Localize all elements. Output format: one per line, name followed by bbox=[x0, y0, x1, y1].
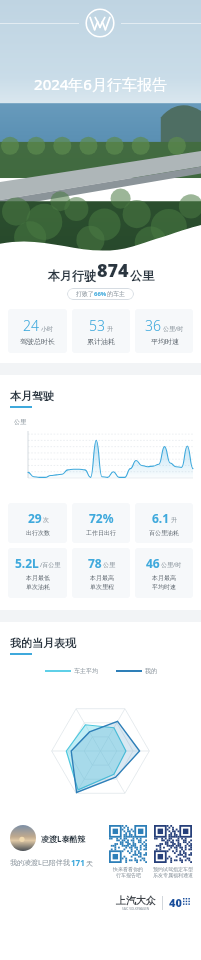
other: Volkswagen bbox=[85, 8, 115, 38]
staticText: 53 bbox=[89, 316, 105, 335]
button[interactable]: 预约试驾指定车型乐友专属福利通道 bbox=[153, 825, 193, 878]
staticText: 本月最高 bbox=[152, 574, 176, 582]
button[interactable]: 36 bbox=[135, 309, 193, 353]
button[interactable]: 72% bbox=[72, 503, 130, 543]
staticText: 升 bbox=[107, 325, 113, 333]
button[interactable]: 29 bbox=[8, 503, 67, 543]
button[interactable]: 5.2L bbox=[8, 548, 67, 598]
staticText: 66% bbox=[94, 290, 107, 298]
staticText: 的车主 bbox=[107, 290, 125, 298]
staticText: 5.2L bbox=[15, 555, 39, 571]
staticText: 工作日出行 bbox=[86, 529, 116, 537]
staticText: 小时 bbox=[41, 325, 53, 333]
staticText: 公里/时 bbox=[163, 325, 184, 333]
staticText: SAIC VOLKSWAGEN bbox=[122, 907, 150, 911]
staticText: 46 bbox=[146, 555, 160, 571]
staticText: 百公里油耗 bbox=[149, 529, 179, 537]
button[interactable]: 24 bbox=[8, 309, 67, 353]
staticText: 上汽大众 bbox=[116, 894, 156, 907]
staticText: 升 bbox=[171, 516, 177, 524]
button[interactable]: 6.1 bbox=[135, 503, 193, 543]
staticText: 预约试驾指定车型 bbox=[153, 866, 193, 872]
button[interactable]: 78 bbox=[72, 548, 130, 598]
button[interactable]: 53 bbox=[72, 309, 130, 353]
staticText: 次 bbox=[43, 516, 49, 524]
staticText: 乐友专属福利通道 bbox=[153, 872, 193, 878]
staticText: 40 bbox=[169, 895, 182, 910]
staticText: 公里 bbox=[103, 561, 115, 569]
staticText: 公里 bbox=[14, 418, 26, 426]
staticText: 出行次数 bbox=[26, 529, 50, 537]
staticText: 874 bbox=[97, 258, 129, 283]
staticText: 我的当月表现 bbox=[10, 636, 76, 650]
staticText: 2024年6月行车报告 bbox=[0, 74, 201, 94]
staticText: 平均时速 bbox=[151, 337, 179, 346]
staticText: 打败了 bbox=[76, 290, 94, 298]
staticText: 我的凌渡L已陪伴我 bbox=[10, 858, 70, 868]
staticText: 本月最低 bbox=[26, 574, 50, 582]
staticText: 78 bbox=[88, 555, 102, 571]
staticText: 行车报告吧 bbox=[116, 872, 141, 878]
staticText: 6.1 bbox=[152, 510, 170, 526]
button[interactable]: 46 bbox=[135, 548, 193, 598]
staticText: 29 bbox=[28, 510, 42, 526]
staticText: 凌渡L泰酷辣 bbox=[41, 833, 86, 844]
button[interactable]: 打败了 bbox=[67, 288, 134, 300]
staticText: 平均时速 bbox=[152, 583, 176, 591]
staticText: 公里 bbox=[130, 268, 154, 283]
staticText: 天 bbox=[86, 859, 93, 868]
staticText: 快来看看你的 bbox=[113, 866, 143, 872]
staticText: 累计油耗 bbox=[87, 337, 115, 346]
staticText: 单次里程 bbox=[90, 583, 114, 591]
staticText: 36 bbox=[145, 316, 161, 335]
staticText: 本月行驶 bbox=[48, 268, 96, 283]
button[interactable]: 快来看看你的行车报告吧 bbox=[109, 825, 147, 878]
staticText: 车主平均 bbox=[74, 667, 98, 675]
staticText: 单次油耗 bbox=[26, 583, 50, 591]
staticText: 公里/时 bbox=[161, 561, 182, 569]
staticText: 72% bbox=[89, 510, 114, 526]
staticText: 24 bbox=[23, 316, 39, 335]
staticText: 171 bbox=[71, 857, 85, 868]
staticText: 驾驶总时长 bbox=[20, 337, 55, 346]
staticText: 本月最高 bbox=[90, 574, 114, 582]
staticText: 本月驾驶 bbox=[10, 389, 54, 403]
staticText: 我的 bbox=[145, 667, 157, 675]
staticText: /百公里 bbox=[40, 561, 61, 569]
